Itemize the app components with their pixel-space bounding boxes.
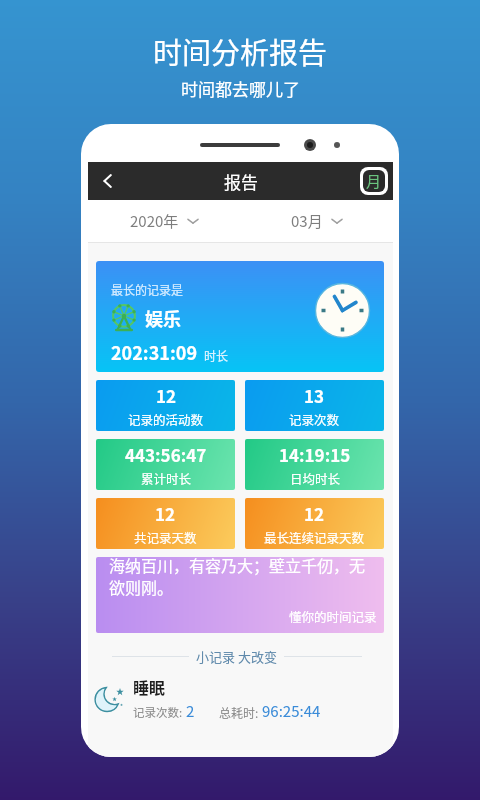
staticText: 时间分析报告 [153, 30, 328, 72]
staticText: 12 [156, 383, 177, 408]
staticText: 最长的记录是 [111, 281, 184, 298]
button[interactable]: 12 [96, 380, 235, 431]
staticText: 日均时长 [290, 469, 341, 487]
staticText: 96:25:44 [262, 700, 321, 722]
staticText: 总耗时: [219, 704, 259, 721]
staticText: 12 [155, 501, 176, 526]
staticText: 时长 [204, 347, 229, 364]
button[interactable]: 14:19:15 [245, 439, 384, 490]
staticText: 14:19:15 [279, 442, 351, 467]
staticText: 记录次数 [289, 410, 340, 428]
staticText: 443:56:47 [125, 442, 207, 467]
staticText: 202:31:09 [111, 339, 198, 365]
button[interactable]: 睡眠 [96, 674, 384, 722]
button[interactable]: 12 [245, 498, 384, 549]
button[interactable]: 13 [245, 380, 384, 431]
button[interactable]: 月 [363, 170, 385, 192]
staticText: 报告 [224, 169, 258, 194]
staticText: 13 [304, 383, 325, 408]
staticText: 2 [186, 700, 195, 722]
staticText: 记录次数: [133, 704, 183, 721]
staticText: 2020年 [130, 210, 179, 232]
button[interactable]: 12 [96, 498, 235, 549]
staticText: 海纳百川，有容乃大；壁立千仞，无欲则刚。 [109, 557, 371, 598]
staticText: 12 [304, 501, 325, 526]
button[interactable]: 2020年 [88, 200, 240, 242]
staticText: 娱乐 [145, 305, 181, 331]
staticText: 累计时长 [141, 469, 192, 487]
button[interactable]: 443:56:47 [96, 439, 235, 490]
staticText: 小记录 大改变 [196, 647, 277, 666]
staticText: 记录的活动数 [128, 410, 204, 428]
staticText: 03月 [291, 210, 323, 232]
button[interactable]: 03月 [240, 200, 393, 242]
button[interactable]: Back [93, 166, 123, 196]
staticText: 时间都去哪儿了 [181, 76, 300, 101]
staticText: 睡眠 [133, 675, 166, 698]
staticText: 最长连续记录天数 [264, 528, 365, 546]
staticText: 月 [366, 170, 382, 192]
staticText: 懂你的时间记录 [289, 607, 377, 625]
staticText: 共记录天数 [134, 528, 197, 546]
